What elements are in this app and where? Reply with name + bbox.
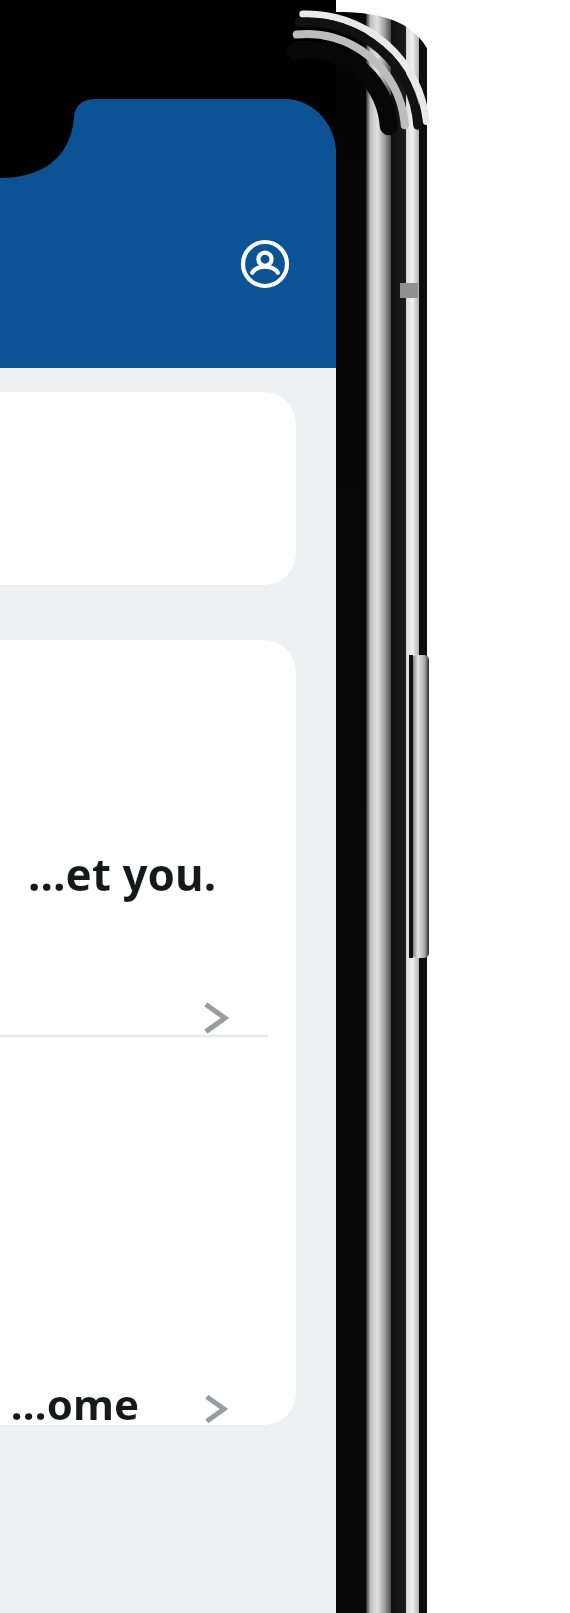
button[interactable]: Account (237, 236, 293, 292)
staticText: …ome (0, 1375, 139, 1425)
staticText: …et you. (0, 844, 216, 904)
button[interactable]: …ome (0, 1037, 296, 1425)
button[interactable]: …et you. (0, 640, 296, 1035)
